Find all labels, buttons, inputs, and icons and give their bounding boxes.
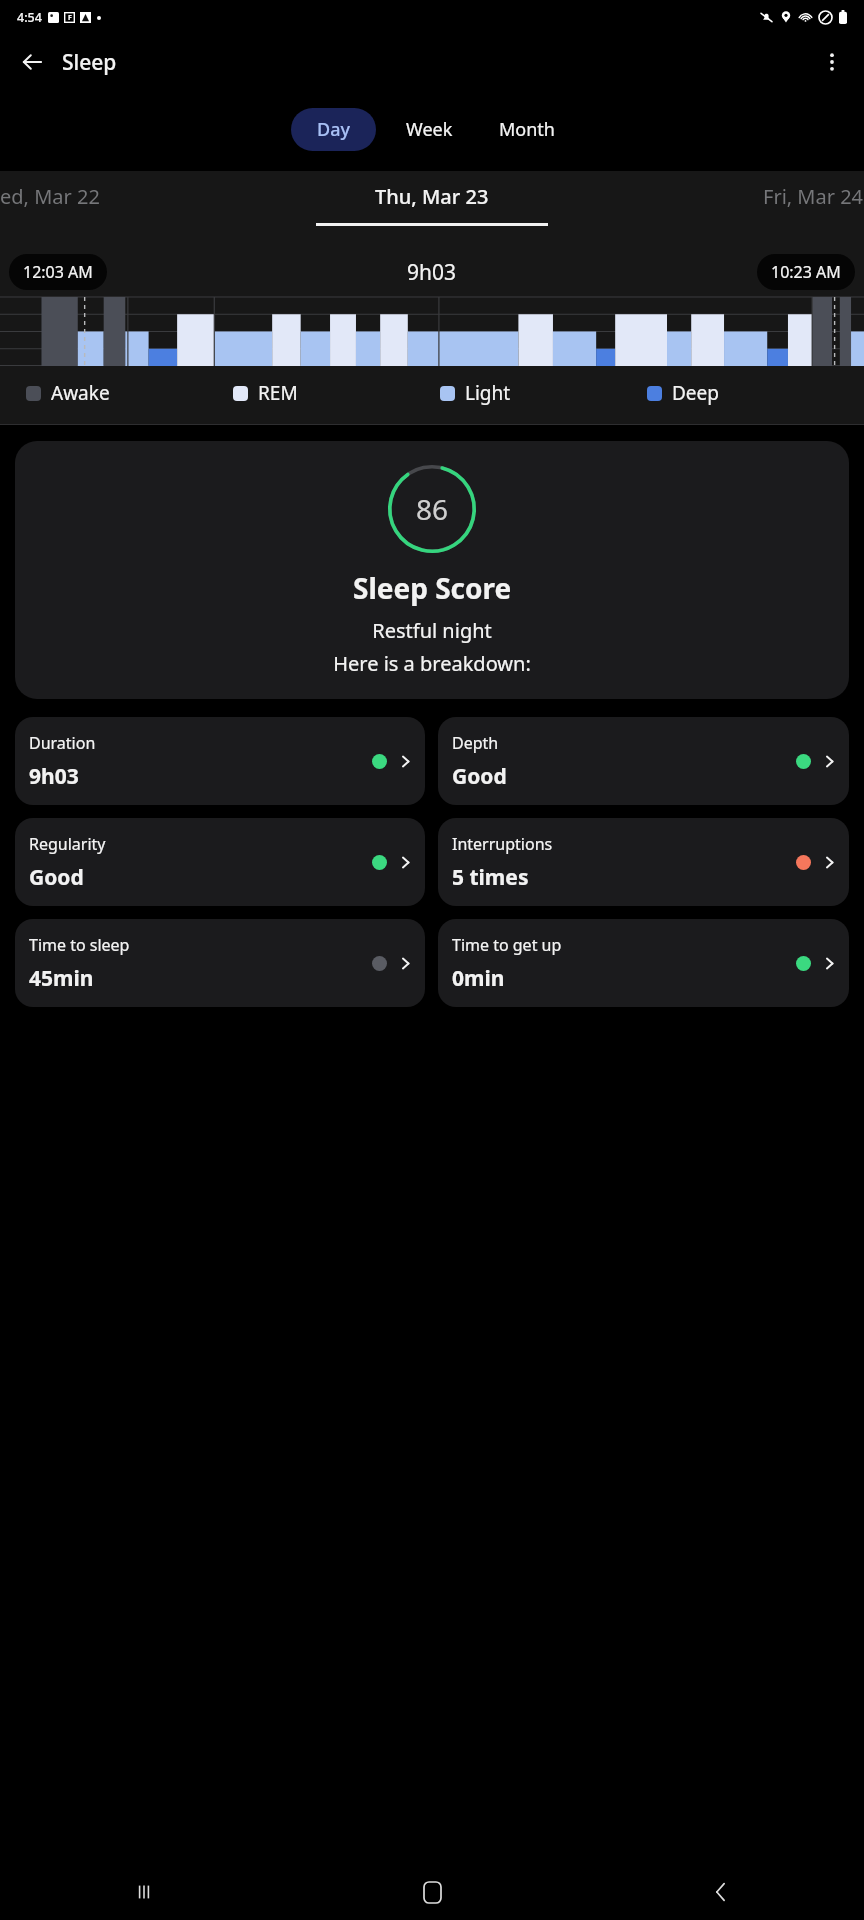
staticText: Awake: [51, 380, 110, 406]
button[interactable]: Depth: [438, 717, 849, 805]
staticText: 5 times: [452, 863, 529, 892]
staticText: Here is a breakdown:: [333, 650, 531, 677]
button[interactable]: Awake: [26, 380, 233, 406]
button[interactable]: Fri, Mar 24: [763, 183, 864, 210]
button[interactable]: Day: [291, 108, 376, 151]
staticText: Duration: [29, 732, 96, 754]
button[interactable]: Home: [288, 1864, 576, 1920]
staticText: Time to get up: [452, 934, 562, 956]
staticText: Sleep Score: [353, 569, 512, 607]
staticText: 10:23 AM: [771, 261, 841, 283]
button[interactable]: Duration: [15, 717, 425, 805]
button[interactable]: Back: [576, 1864, 864, 1920]
staticText: F: [68, 13, 72, 23]
staticText: Restful night: [372, 617, 492, 644]
button[interactable]: Deep: [647, 380, 838, 406]
button[interactable]: Time to sleep: [15, 919, 425, 1007]
button[interactable]: Interruptions: [438, 818, 849, 906]
button[interactable]: More options: [808, 38, 856, 86]
staticText: Interruptions: [452, 833, 553, 855]
staticText: 86: [416, 490, 449, 528]
button[interactable]: Month: [481, 108, 573, 151]
button[interactable]: Time to get up: [438, 919, 849, 1007]
button[interactable]: Thu, Mar 23: [375, 183, 489, 210]
staticText: 12:03 AM: [23, 261, 93, 283]
staticText: Deep: [672, 380, 719, 406]
staticText: Sleep: [62, 48, 117, 77]
button[interactable]: REM: [233, 380, 440, 406]
button[interactable]: Recents: [0, 1864, 288, 1920]
staticText: 9h03: [407, 258, 457, 287]
staticText: 0min: [452, 964, 505, 993]
staticText: 9h03: [29, 762, 79, 791]
staticText: Day: [317, 117, 350, 142]
button[interactable]: 86: [15, 441, 849, 699]
staticText: Time to sleep: [29, 934, 130, 956]
button[interactable]: Regularity: [15, 818, 425, 906]
staticText: Week: [406, 117, 453, 142]
staticText: Good: [29, 863, 84, 892]
staticText: Month: [499, 117, 555, 142]
staticText: Light: [465, 380, 511, 406]
button[interactable]: Week: [388, 108, 471, 151]
staticText: REM: [258, 380, 298, 406]
staticText: Depth: [452, 732, 499, 754]
staticText: 4:54: [17, 9, 42, 26]
staticText: 45min: [29, 964, 94, 993]
button[interactable]: ed, Mar 22: [0, 183, 100, 210]
staticText: Regularity: [29, 833, 106, 855]
button[interactable]: Light: [440, 380, 647, 406]
staticText: Good: [452, 762, 507, 791]
button[interactable]: Back: [8, 38, 56, 86]
